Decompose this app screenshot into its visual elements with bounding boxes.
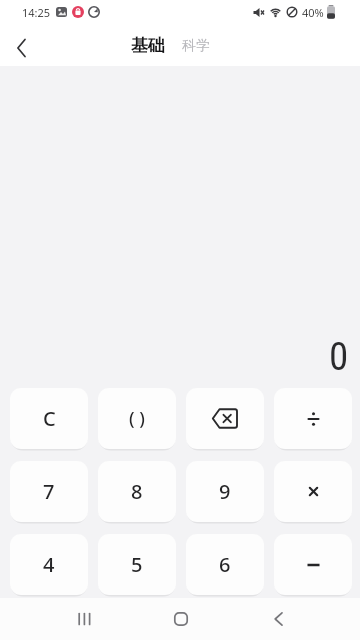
button[interactable]: [186, 388, 264, 449]
staticText: C: [43, 405, 56, 432]
staticText: 14:25: [22, 5, 51, 20]
staticText: 基础: [131, 35, 165, 56]
staticText: ( ): [129, 406, 145, 431]
button[interactable]: [262, 603, 294, 635]
staticText: 6: [219, 551, 231, 578]
staticText: 科学: [182, 37, 210, 55]
staticText: 7: [43, 478, 55, 505]
button[interactable]: [274, 461, 352, 522]
button[interactable]: [165, 603, 197, 635]
staticText: 40%: [302, 5, 324, 20]
button[interactable]: 科学: [182, 37, 210, 55]
staticText: 5: [131, 551, 143, 578]
button[interactable]: 7: [10, 461, 88, 522]
button[interactable]: C: [10, 388, 88, 449]
staticText: 4: [43, 551, 55, 578]
button[interactable]: [68, 603, 100, 635]
button[interactable]: 5: [98, 534, 176, 595]
button[interactable]: ( ): [98, 388, 176, 449]
button[interactable]: [274, 534, 352, 595]
button[interactable]: 基础: [131, 35, 165, 56]
staticText: 8: [131, 478, 143, 505]
button[interactable]: [274, 388, 352, 449]
button[interactable]: 9: [186, 461, 264, 522]
staticText: 0: [329, 334, 349, 380]
button[interactable]: [8, 35, 34, 61]
button[interactable]: 6: [186, 534, 264, 595]
staticText: 9: [219, 478, 231, 505]
button[interactable]: 8: [98, 461, 176, 522]
button[interactable]: 4: [10, 534, 88, 595]
